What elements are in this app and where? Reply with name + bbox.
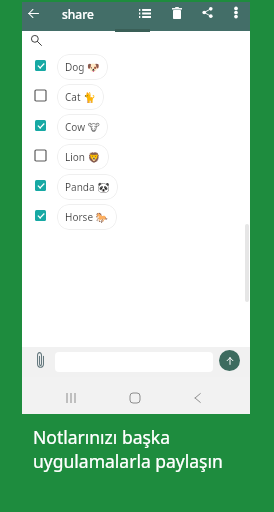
button[interactable]: Cow 🐮 — [22, 112, 250, 142]
button[interactable]: Send — [219, 350, 240, 371]
button[interactable]: Panda 🐼 — [22, 172, 250, 202]
staticText: Notlarınızı başka uygulamalarla paylaşın — [33, 425, 223, 473]
button[interactable]: Back — [190, 390, 205, 405]
staticText: Horse 🐎 — [65, 210, 109, 224]
staticText: Cow 🐮 — [65, 120, 100, 134]
staticText: share — [62, 6, 94, 22]
staticText: Dog 🐶 — [65, 60, 100, 74]
button[interactable]: Lion 🦁 — [22, 142, 250, 172]
button[interactable]: More options — [224, 1, 247, 24]
button[interactable]: Share — [196, 1, 219, 24]
button[interactable]: Attach file — [35, 350, 48, 370]
staticText: Cat 🐈 — [65, 90, 96, 104]
staticText: Lion 🦁 — [65, 150, 101, 164]
button[interactable]: View as list — [133, 1, 156, 24]
button[interactable]: Back — [22, 2, 45, 25]
button[interactable]: Dog 🐶 — [22, 52, 250, 82]
button[interactable]: Cat 🐈 — [22, 82, 250, 112]
button[interactable]: Search — [31, 35, 42, 46]
button[interactable]: Recent apps — [63, 390, 78, 405]
button[interactable]: Home — [127, 390, 142, 405]
button[interactable]: Delete — [165, 1, 188, 24]
staticText: Panda 🐼 — [65, 180, 110, 194]
button[interactable]: Horse 🐎 — [22, 202, 250, 232]
